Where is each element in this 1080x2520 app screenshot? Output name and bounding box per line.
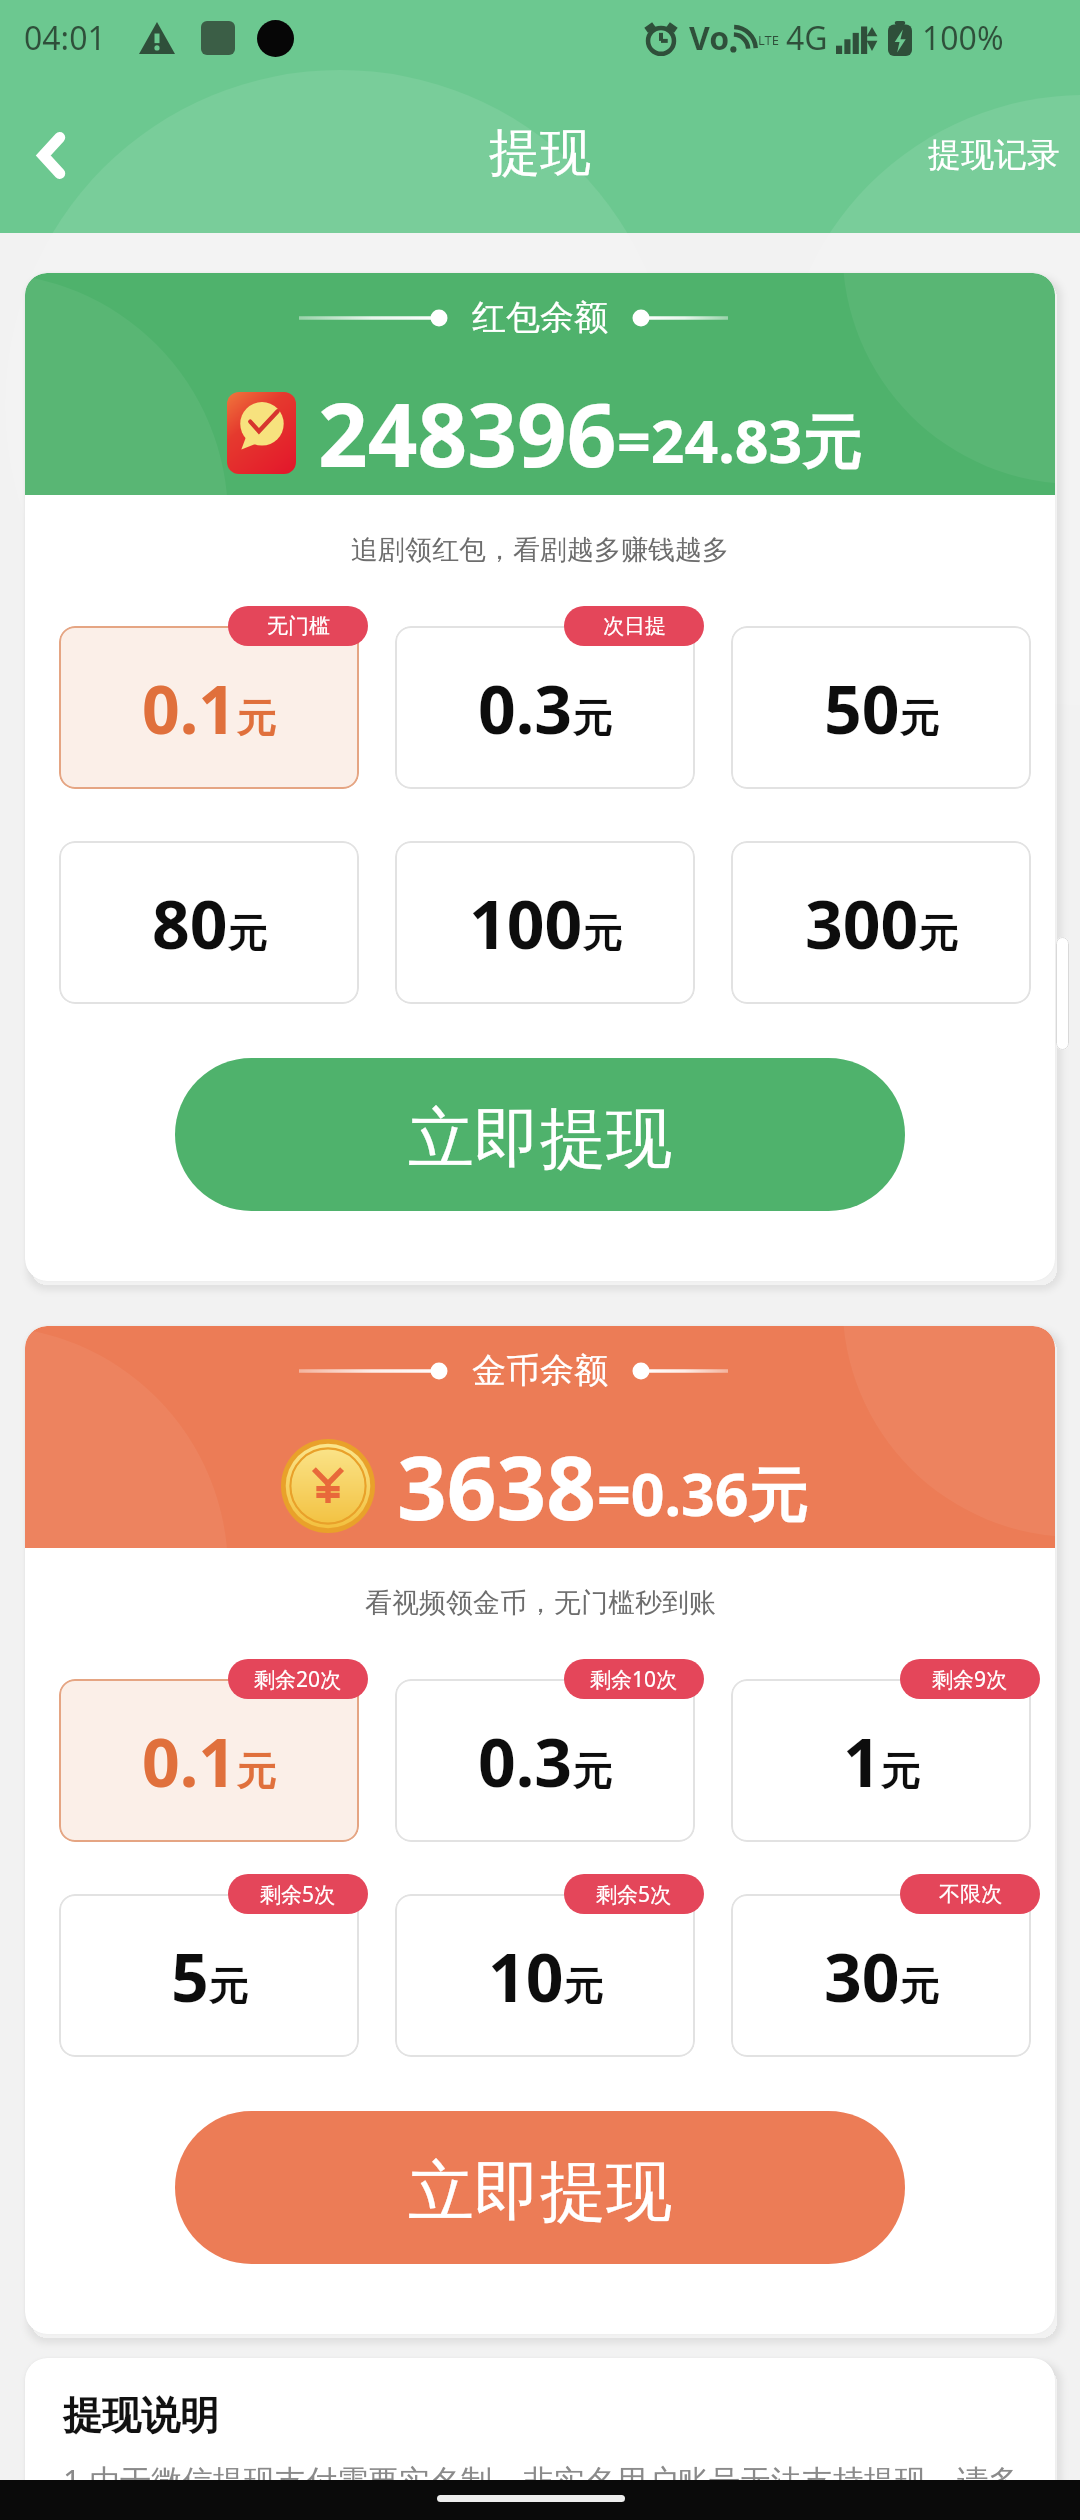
button[interactable]: 提现记录	[914, 120, 1074, 190]
button[interactable]: 0.3	[395, 626, 695, 789]
staticText: 剩余5次	[596, 1880, 672, 1909]
staticText: 提现记录	[928, 134, 1060, 176]
staticText: 追剧领红包，看剧越多赚钱越多	[351, 533, 729, 567]
staticText: =24.83元	[617, 400, 862, 481]
staticText: 10	[488, 1931, 564, 2021]
staticText: 300	[805, 878, 919, 968]
staticText: 3638	[397, 1427, 597, 1545]
staticText: 4G	[786, 16, 828, 60]
staticText: 红包余额	[472, 296, 608, 339]
staticText: 0.1	[142, 663, 237, 753]
button[interactable]: 300	[731, 841, 1031, 1004]
staticText: 0.1	[142, 1716, 237, 1806]
staticText: =0.36元	[597, 1453, 808, 1534]
staticText: 80	[152, 878, 228, 968]
button[interactable]: 0.3	[395, 1679, 695, 1842]
staticText: 剩余20次	[254, 1665, 342, 1694]
button[interactable]: 50	[731, 626, 1031, 789]
button[interactable]: Back	[10, 115, 90, 195]
staticText: 1.由于微信提现支付需要实名制，非实名用户账号无法支持提现，请多	[63, 2459, 1020, 2501]
staticText: 剩余9次	[932, 1665, 1008, 1694]
staticText: LTE	[758, 31, 780, 49]
staticText: 30	[824, 1931, 900, 2021]
staticText: 元	[919, 909, 958, 958]
staticText: Vo	[689, 16, 730, 60]
staticText: 100	[469, 878, 583, 968]
button[interactable]: 5	[59, 1894, 359, 2057]
staticText: 看视频领金币，无门槛秒到账	[365, 1586, 716, 1620]
button[interactable]: 1	[731, 1679, 1031, 1842]
button[interactable]: 0.1	[59, 626, 359, 789]
staticText: 04:01	[24, 16, 106, 60]
staticText: 0.3	[478, 1716, 573, 1806]
staticText: 剩余5次	[260, 1880, 336, 1909]
staticText: 元	[900, 1962, 939, 2011]
staticText: 元	[564, 1962, 603, 2011]
staticText: 立即提现	[408, 2150, 672, 2233]
staticText: 立即提现	[408, 1097, 672, 1180]
staticText: 无门槛	[267, 613, 330, 639]
staticText: 元	[228, 909, 267, 958]
button[interactable]: 80	[59, 841, 359, 1004]
staticText: 50	[824, 663, 900, 753]
staticText: 提现	[489, 121, 591, 185]
staticText: 元	[573, 1747, 612, 1796]
button[interactable]: 100	[395, 841, 695, 1004]
button[interactable]: 10	[395, 1894, 695, 2057]
staticText: 次日提	[603, 613, 666, 639]
button[interactable]: 立即提现	[175, 2111, 905, 2264]
staticText: 提现说明	[63, 2391, 219, 2440]
staticText: 元	[237, 694, 276, 743]
staticText: 元	[583, 909, 622, 958]
staticText: 元	[573, 694, 612, 743]
staticText: 100%	[922, 16, 1004, 60]
staticText: 元	[881, 1747, 920, 1796]
staticText: 元	[237, 1747, 276, 1796]
button[interactable]: 立即提现	[175, 1058, 905, 1211]
staticText: 元	[209, 1962, 248, 2011]
staticText: 不限次	[939, 1881, 1002, 1907]
staticText: 0.3	[478, 663, 573, 753]
staticText: 剩余10次	[590, 1665, 678, 1694]
button[interactable]: 30	[731, 1894, 1031, 2057]
staticText: 248396	[318, 374, 617, 492]
button[interactable]: 0.1	[59, 1679, 359, 1842]
staticText: 金币余额	[472, 1349, 608, 1392]
staticText: 元	[900, 694, 939, 743]
staticText: 1	[843, 1716, 881, 1806]
staticText: 5	[171, 1931, 209, 2021]
